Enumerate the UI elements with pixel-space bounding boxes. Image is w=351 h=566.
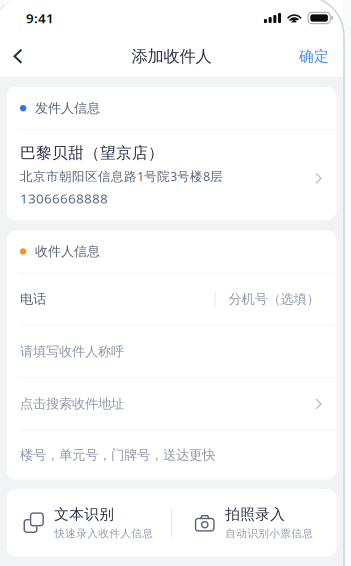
button[interactable]: 确定 [289, 36, 339, 76]
staticText: 请填写收件人称呼 [20, 343, 124, 360]
staticText: 9:41 [26, 9, 54, 27]
staticText: 13066668888 [20, 189, 108, 207]
button[interactable]: 点击搜索收件地址 [6, 378, 336, 429]
staticText: 分机号（选填） [228, 291, 319, 307]
staticText: 文本识别 [54, 505, 114, 523]
button[interactable]: 文本识别 [6, 489, 171, 556]
staticText: 收件人信息 [35, 243, 100, 260]
staticText: 添加收件人 [131, 46, 211, 66]
button[interactable]: 拍照录入 [172, 489, 336, 556]
staticText: 电话 [20, 291, 46, 307]
staticText: 拍照录入 [225, 505, 285, 523]
staticText: 快速录入收件人信息 [54, 527, 153, 540]
staticText: 发件人信息 [35, 100, 100, 116]
staticText: 北京市朝阳区信息路1号院3号楼8层 [20, 168, 223, 185]
button[interactable]: 巴黎贝甜（望京店） [6, 130, 336, 220]
staticText: 巴黎贝甜（望京店） [20, 143, 164, 163]
staticText: 点击搜索收件地址 [20, 396, 124, 412]
button[interactable]: 返回 [0, 36, 36, 76]
staticText: 自动识别小票信息 [225, 527, 313, 540]
staticText: 确定 [299, 47, 329, 65]
staticText: 楼号，单元号，门牌号，送达更快 [20, 446, 215, 463]
